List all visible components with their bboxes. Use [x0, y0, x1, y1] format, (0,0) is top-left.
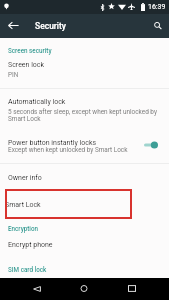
staticText: PIN: [8, 71, 19, 79]
staticText: Screen security: [8, 47, 52, 54]
staticText: 5 seconds after sleep, except when kept …: [8, 108, 165, 122]
staticText: Screen lock: [8, 61, 45, 69]
button[interactable]: Home: [67, 278, 101, 300]
button[interactable]: Navigate up: [0, 14, 27, 38]
button[interactable]: Search: [146, 14, 169, 38]
staticText: Except when kept unlocked by Smart Lock: [8, 146, 128, 154]
staticText: SIM card lock: [8, 266, 47, 273]
staticText: Power button instantly locks: [8, 139, 97, 147]
staticText: 16:39: [148, 3, 166, 11]
button[interactable]: Encrypt phone: [0, 237, 169, 254]
staticText: Automatically lock: [8, 98, 66, 106]
button[interactable]: Recent apps: [115, 278, 149, 300]
button[interactable]: Automatically lock: [0, 94, 169, 126]
button[interactable]: Screen lock: [0, 57, 169, 84]
button[interactable]: Owner info: [0, 170, 169, 187]
button[interactable]: Smart Lock: [5, 189, 132, 219]
staticText: Security: [35, 21, 67, 31]
button[interactable]: Back: [20, 278, 54, 300]
button[interactable]: Power button instantly locks: [0, 135, 169, 159]
staticText: Owner info: [8, 174, 42, 182]
staticText: Smart Lock: [5, 201, 41, 209]
staticText: Encrypt phone: [8, 241, 53, 249]
staticText: Encryption: [8, 225, 39, 232]
